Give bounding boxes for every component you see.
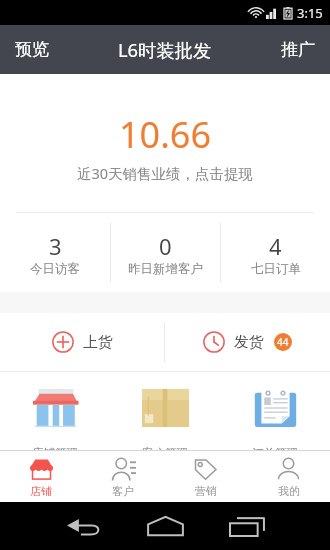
staticText: 店铺 <box>30 484 52 498</box>
staticText: 店铺管理 <box>32 446 78 450</box>
staticText: 上货 <box>83 333 113 352</box>
staticText: 近30天销售业绩，点击提现 <box>77 163 254 183</box>
button[interactable]: 预览 <box>0 25 64 74</box>
button[interactable]: 客户管理 <box>110 372 220 450</box>
button[interactable]: Back <box>59 506 108 546</box>
staticText: L6时装批发 <box>118 37 212 62</box>
staticText: 七日订单 <box>251 261 301 277</box>
staticText: 营销 <box>195 484 217 498</box>
button[interactable]: 上货 <box>0 313 164 371</box>
button[interactable]: 10.66 <box>0 74 330 212</box>
staticText: 发货 <box>234 333 264 352</box>
button[interactable]: 客户 <box>82 451 164 502</box>
staticText: 44 <box>277 335 289 349</box>
staticText: 预览 <box>15 39 49 60</box>
staticText: 今日访客 <box>30 261 80 277</box>
staticText: 我的 <box>278 484 300 498</box>
button[interactable]: 0 <box>111 213 220 292</box>
button[interactable]: 4 <box>221 213 330 292</box>
button[interactable]: 订单管理 <box>220 372 330 450</box>
button[interactable]: 店铺管理 <box>0 372 110 450</box>
staticText: 客户管理 <box>142 446 188 450</box>
button[interactable]: 3 <box>0 213 110 292</box>
button[interactable]: Recents <box>223 506 272 546</box>
staticText: 昨日新增客户 <box>128 261 203 277</box>
staticText: 4 <box>269 231 282 261</box>
staticText: 订单管理 <box>252 446 298 450</box>
button[interactable]: 推广 <box>266 25 330 74</box>
staticText: 3 <box>49 231 62 261</box>
button[interactable]: 我的 <box>247 451 330 502</box>
button[interactable]: 营销 <box>164 451 247 502</box>
staticText: 10.66 <box>119 110 212 159</box>
staticText: 推广 <box>281 39 315 60</box>
button[interactable]: 发货 <box>165 313 330 371</box>
button[interactable]: Home <box>141 506 190 546</box>
staticText: 0 <box>159 231 172 261</box>
staticText: 3:15 <box>297 4 323 22</box>
staticText: 客户 <box>112 484 134 498</box>
button[interactable]: 店铺 <box>0 451 82 502</box>
